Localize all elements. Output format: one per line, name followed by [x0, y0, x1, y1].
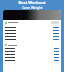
staticText: Lose Weight	[22, 5, 43, 10]
staticText: Best Workout	[18, 0, 46, 5]
